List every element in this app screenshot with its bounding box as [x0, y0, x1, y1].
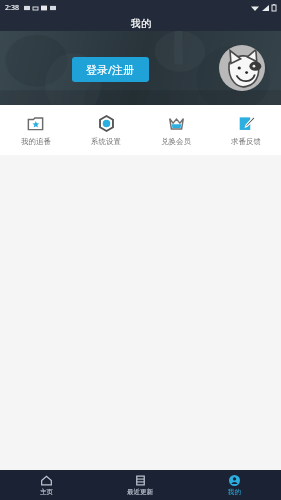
staticText: 系统设置: [91, 137, 121, 146]
button[interactable]: 求番反馈: [211, 105, 281, 155]
button[interactable]: Profile avatar: [219, 45, 265, 91]
staticText: 求番反馈: [231, 137, 261, 146]
button[interactable]: 最近更新: [93, 470, 187, 500]
button[interactable]: 我的追番: [0, 105, 71, 155]
button[interactable]: 主页: [0, 470, 93, 500]
button[interactable]: 系统设置: [71, 105, 141, 155]
staticText: 登录/注册: [86, 62, 135, 77]
staticText: 主页: [40, 488, 53, 496]
staticText: 2:38: [5, 3, 19, 13]
button[interactable]: 登录/注册: [72, 57, 149, 82]
staticText: 我的追番: [21, 137, 51, 146]
staticText: 兑换会员: [161, 137, 191, 146]
staticText: 我的: [131, 17, 151, 30]
button[interactable]: 兑换会员: [141, 105, 211, 155]
staticText: 最近更新: [127, 488, 153, 496]
button[interactable]: 我的: [187, 470, 281, 500]
staticText: 我的: [228, 488, 241, 496]
